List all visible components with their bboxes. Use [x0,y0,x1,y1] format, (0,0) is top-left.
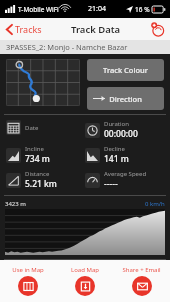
staticText: T-Mobile WiFi [18,5,59,14]
button[interactable]: Distance [6,170,85,190]
staticText: Tracks [15,23,42,35]
staticText: ----- [104,178,118,190]
button[interactable]: Duration [85,120,164,140]
staticText: 5.21 km [25,178,57,190]
button[interactable]: Track map preview [6,59,80,106]
button[interactable]: Track Colour [87,59,164,81]
button[interactable]: Elevation profile chart [5,209,165,255]
staticText: Direction [109,94,142,104]
button[interactable]: Load Map [56,260,113,302]
button[interactable]: Tracks [4,21,44,37]
staticText: 3423 m [5,200,26,208]
staticText: Load Map [71,266,99,274]
staticText: 0 km/h [145,200,165,208]
button[interactable]: Direction [87,87,164,110]
staticText: 21:04 [88,4,106,14]
staticText: Incline [25,145,44,153]
staticText: Average Speed [104,170,147,178]
staticText: Share + Email [122,266,161,274]
button[interactable]: Decline [85,145,164,165]
staticText: Duration [104,120,129,128]
staticText: 16 % [135,5,150,14]
staticText: Track Data [71,23,121,36]
staticText: 00:00:00 [104,128,138,140]
button[interactable]: Add track [148,20,166,38]
button[interactable]: Average Speed [85,170,164,190]
button[interactable]: Share + Email [113,260,170,302]
staticText: 141 m [104,153,129,165]
staticText: Date [25,124,39,132]
button[interactable]: Use in Map [0,260,56,302]
staticText: Distance [25,170,50,178]
button[interactable]: Date [6,120,85,135]
staticText: 734 m [25,153,50,165]
staticText: 3PASSES_2: Monjo - Namche Bazar [6,42,128,52]
staticText: Decline [104,145,125,153]
staticText: Track Colour [103,65,148,75]
staticText: Use in Map [12,266,44,274]
button[interactable]: Incline [6,145,85,165]
button[interactable]: 3PASSES_2: Monjo - Namche Bazar [0,40,170,54]
